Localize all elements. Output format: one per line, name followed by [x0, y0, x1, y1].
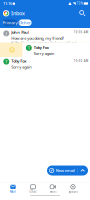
staticText: Mail [10, 190, 16, 193]
staticText: 10:02 AM [74, 59, 88, 63]
button[interactable]: Expand compose options [77, 165, 88, 175]
staticText: Sorry again [34, 51, 54, 56]
staticText: New email [56, 168, 75, 173]
staticText: Meet [49, 190, 56, 193]
button[interactable]: Mail [3, 182, 23, 195]
staticText: T [28, 45, 30, 50]
button[interactable]: T [0, 57, 90, 70]
button[interactable]: J [0, 28, 90, 42]
button[interactable]: Other [19, 19, 32, 26]
button[interactable]: Account [3, 10, 9, 16]
staticText: Toby Fox [11, 58, 26, 64]
staticText: 11:16 [3, 1, 12, 6]
button[interactable]: Spaces [63, 182, 83, 195]
staticText: Hi Tae, I hope this message finds you we… [11, 41, 79, 45]
staticText: J [6, 31, 7, 36]
staticText: Inbox [11, 10, 25, 17]
button[interactable]: Chat [23, 182, 43, 195]
staticText: 73% [77, 2, 83, 5]
staticText: T [5, 59, 7, 64]
staticText: Other [19, 20, 31, 25]
button[interactable]: T [22, 42, 90, 57]
button[interactable]: Meet [43, 182, 63, 195]
staticText: Chat [29, 190, 36, 193]
staticText: How are you doing, my friend? [11, 35, 64, 41]
staticText: 10:06 AM [74, 30, 88, 34]
staticText: John Paul [11, 30, 29, 35]
button[interactable]: New email [47, 165, 77, 175]
button[interactable]: Search [78, 9, 86, 17]
button[interactable]: Primary [2, 19, 17, 26]
staticText: Sorry again [11, 64, 31, 70]
staticText: Primary [2, 20, 17, 25]
staticText: Toby Fox [34, 45, 49, 50]
staticText: Spaces [68, 190, 77, 193]
